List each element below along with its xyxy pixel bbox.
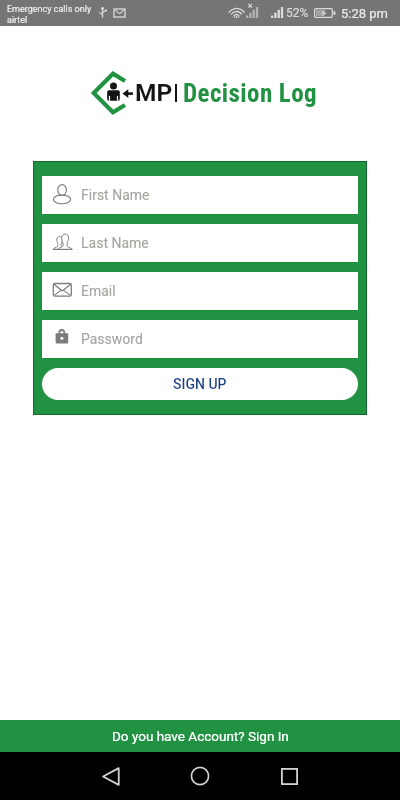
staticText: SIGN UP [173,376,227,392]
button[interactable]: Email [42,272,358,310]
button[interactable]: SIGN UP [42,368,358,400]
staticText: Emergency calls only [7,4,92,15]
staticText: Password [81,331,143,347]
staticText: airtel [7,15,28,26]
button[interactable]: Do you have Account? Sign In [0,720,400,752]
staticText: Email [81,283,116,299]
staticText: First Name [81,187,150,203]
button[interactable]: Back [88,753,134,799]
staticText: MP [135,78,173,107]
button[interactable]: Password [42,320,358,358]
staticText: Do you have Account? Sign In [112,728,289,744]
button[interactable]: Last Name [42,224,358,262]
staticText: 52% [286,6,309,20]
staticText: Last Name [81,235,149,251]
button[interactable]: Home [177,753,223,799]
button[interactable]: First Name [42,176,358,214]
staticText: Decision Log [183,79,318,108]
button[interactable]: Recents [266,753,312,799]
staticText: 5:28 pm [341,6,388,21]
